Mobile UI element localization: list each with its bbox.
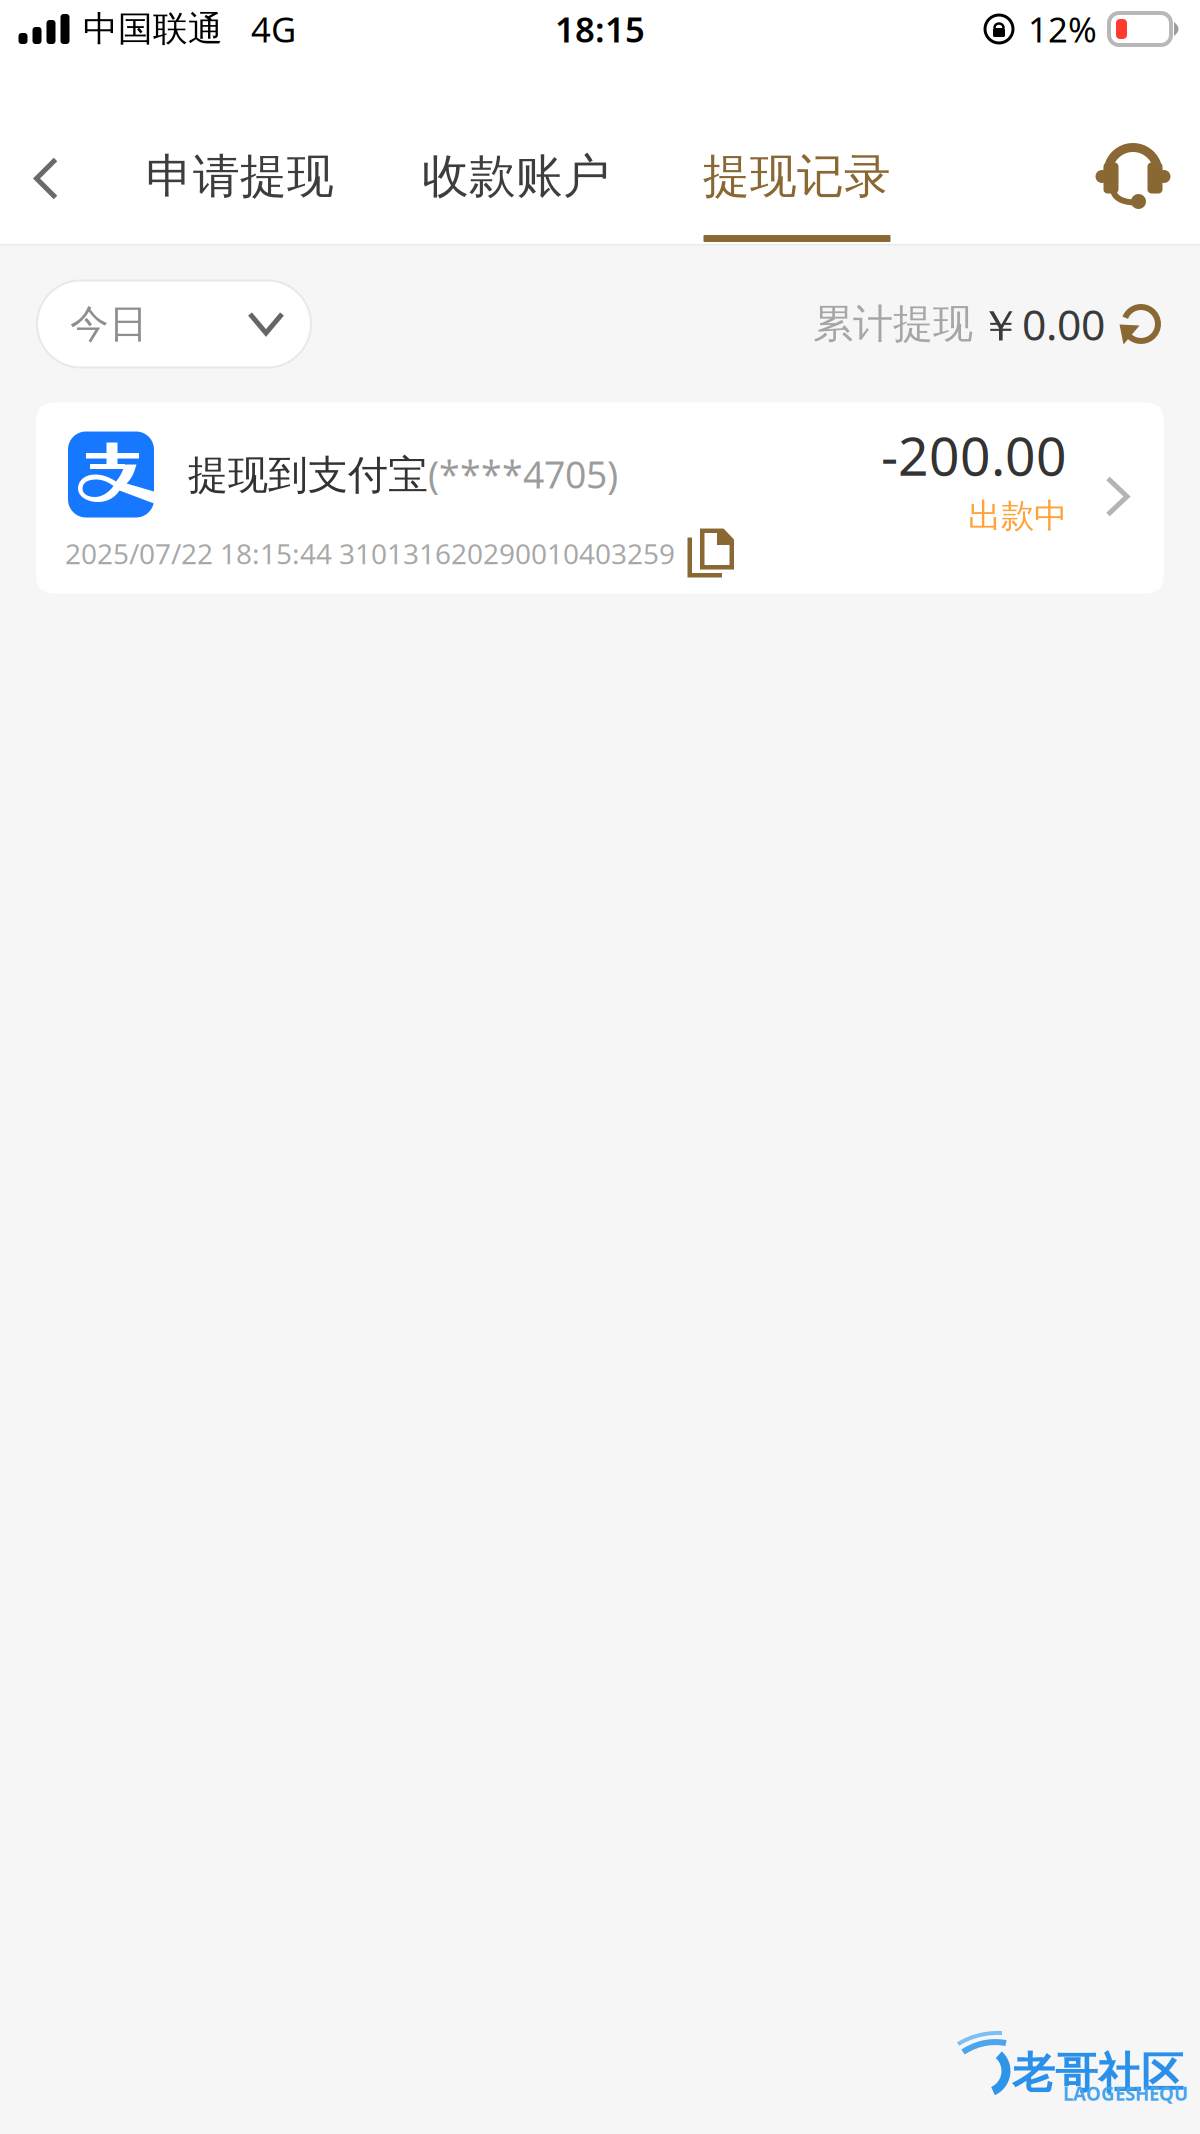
staticText: (****4705) bbox=[428, 449, 618, 499]
button[interactable]: Refresh bbox=[1113, 296, 1169, 352]
staticText: 18:15 bbox=[555, 6, 645, 52]
staticText: 申请提现 bbox=[146, 148, 334, 205]
staticText: 中国联通 bbox=[83, 8, 223, 50]
staticText: 提现到支付宝 bbox=[188, 451, 428, 500]
button[interactable]: 提现到支付宝 bbox=[36, 402, 1164, 593]
staticText: 老哥社区 bbox=[1012, 2047, 1184, 2099]
button[interactable]: 提现记录 bbox=[702, 58, 892, 244]
button[interactable]: Back bbox=[0, 58, 92, 244]
button[interactable]: 今日 bbox=[37, 280, 311, 367]
staticText: -200.00 bbox=[881, 420, 1067, 490]
staticText: LAOGESHEQU bbox=[1063, 2081, 1188, 2106]
staticText: 提现记录 bbox=[703, 148, 891, 205]
button[interactable]: 申请提现 bbox=[145, 58, 335, 244]
staticText: 出款中 bbox=[968, 495, 1067, 536]
staticText: 累计提现 bbox=[813, 299, 973, 348]
staticText: 收款账户 bbox=[422, 148, 610, 205]
staticText: 4G bbox=[251, 6, 296, 52]
staticText: 今日 bbox=[70, 300, 148, 348]
staticText: 12% bbox=[1028, 6, 1097, 52]
staticText: 2025/07/22 18:15:44 31013162029001040325… bbox=[65, 535, 675, 572]
button[interactable]: 收款账户 bbox=[421, 58, 611, 244]
button[interactable]: Customer service bbox=[1078, 58, 1188, 244]
staticText: ￥0.00 bbox=[979, 296, 1105, 352]
